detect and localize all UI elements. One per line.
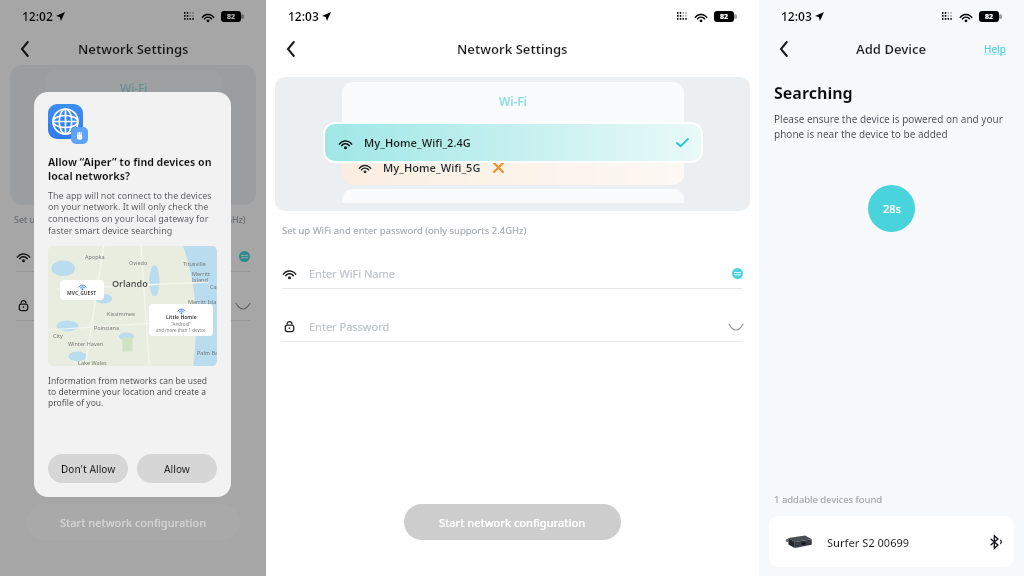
button[interactable]: Enter WiFi Name <box>16 243 250 269</box>
staticText: and more than 1 device <box>156 327 206 333</box>
staticText: My_Home_Wifi_5G <box>383 160 481 175</box>
staticText: Titusville <box>183 260 206 267</box>
staticText: Enter Password <box>43 298 124 313</box>
staticText: 12:03 <box>288 8 319 24</box>
staticText: 82 <box>985 12 994 22</box>
staticText: Kissimmee <box>107 310 136 317</box>
button[interactable]: Enter WiFi Name <box>282 260 743 286</box>
staticText: 82 <box>720 12 729 22</box>
staticText: Orlando <box>112 277 148 289</box>
staticText: Palm Bay <box>197 349 217 356</box>
button[interactable]: Don't Allow <box>48 454 128 483</box>
staticText: Merritt Isla <box>188 298 217 305</box>
staticText: Help <box>984 42 1006 56</box>
staticText: Cap <box>210 283 217 290</box>
staticText: Start network configuration <box>60 515 207 530</box>
other: Switch network <box>732 268 743 279</box>
staticText: MVC_GUEST <box>67 290 97 297</box>
staticText: Poinciana <box>94 324 120 331</box>
staticText: Wi-Fi <box>499 93 527 109</box>
staticText: Apopka <box>85 253 105 260</box>
other: Show password <box>236 301 250 310</box>
button[interactable]: Enter Password <box>16 292 250 318</box>
staticText: 1 addable devices found <box>774 493 883 506</box>
staticText: The app will not connect to the devices … <box>48 189 217 237</box>
staticText: 82 <box>227 12 236 22</box>
button[interactable]: Help <box>980 38 1010 60</box>
staticText: Add Device <box>856 40 927 58</box>
staticText: Please ensure the device is powered on a… <box>774 112 1006 141</box>
staticText: 12:02 <box>22 8 53 24</box>
staticText: 12:03 <box>781 8 812 24</box>
button[interactable]: My_Home_Wifi_5G <box>342 149 684 185</box>
staticText: My_Home_Wifi_2.4G <box>364 135 471 150</box>
staticText: Network Settings <box>78 40 189 58</box>
button[interactable]: Back <box>769 34 799 64</box>
staticText: Wi-Fi <box>120 80 148 96</box>
staticText: Enter Password <box>309 319 390 334</box>
staticText: Don't Allow <box>61 462 116 476</box>
staticText: Merritt <box>192 270 211 277</box>
button[interactable]: Start network configuration <box>27 504 240 540</box>
staticText: Enter WiFi Name <box>43 249 129 264</box>
staticText: Lake Wales <box>78 359 107 366</box>
staticText: "Android" <box>171 321 192 327</box>
button[interactable]: My_Home_Wifi_2.4G <box>325 124 701 161</box>
button[interactable]: Surfer S2 00699 <box>769 516 1014 567</box>
button[interactable]: Enter Password <box>282 313 743 339</box>
staticText: Winter Haven <box>68 340 104 347</box>
staticText: Allow <box>164 462 190 476</box>
other: Switch network <box>239 251 250 262</box>
staticText: Searching <box>774 82 853 104</box>
staticText: Little Homie <box>166 314 197 321</box>
staticText: Start network configuration <box>439 515 586 530</box>
button[interactable]: Back <box>276 34 306 64</box>
staticText: Allow “Aiper” to find devices on local n… <box>48 155 217 183</box>
staticText: 28s <box>883 201 901 216</box>
staticText: Information from networks can be used to… <box>48 375 217 408</box>
staticText: Enter WiFi Name <box>309 266 395 281</box>
staticText: Network Settings <box>457 40 568 58</box>
staticText: Set up WiFi and enter password (only sup… <box>282 224 527 237</box>
staticText: City <box>53 332 63 339</box>
button[interactable]: Back <box>10 34 40 64</box>
other: Show password <box>729 322 743 331</box>
staticText: Surfer S2 00699 <box>827 535 910 550</box>
staticText: Oviedo <box>129 259 148 266</box>
other: Bluetooth <box>990 535 1001 549</box>
staticText: Set up WiFi and enter password (only sup… <box>14 213 246 225</box>
button[interactable]: Allow <box>137 454 217 483</box>
button[interactable]: Start network configuration <box>404 504 621 540</box>
staticText: Island <box>192 276 208 283</box>
